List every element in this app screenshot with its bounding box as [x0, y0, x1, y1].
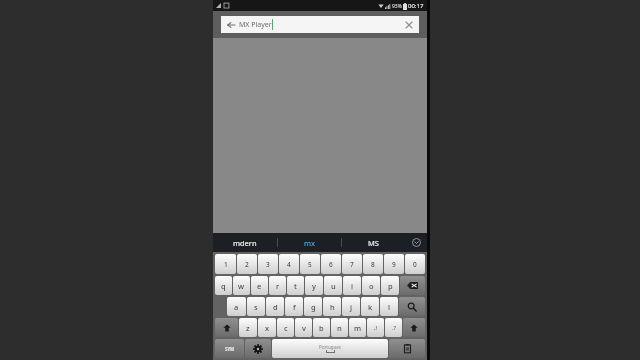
staticText: 5	[308, 260, 312, 269]
button[interactable]: i	[343, 276, 361, 295]
button[interactable]: Back	[225, 19, 236, 30]
staticText: SYM	[225, 346, 235, 352]
staticText: mx	[304, 238, 315, 248]
button[interactable]: v	[295, 318, 312, 337]
button[interactable]: Backspace	[400, 276, 425, 295]
staticText: 93%	[392, 3, 402, 10]
button[interactable]: Clear	[403, 19, 415, 31]
staticText: MX Player	[239, 20, 272, 30]
button[interactable]: w	[233, 276, 250, 295]
button[interactable]: SYM	[215, 339, 244, 358]
button[interactable]: MS	[342, 233, 405, 252]
staticText: 6	[329, 260, 333, 269]
button[interactable]: Portugues	[272, 339, 388, 358]
staticText: h	[330, 302, 335, 312]
button[interactable]: x	[258, 318, 276, 337]
staticText: t	[294, 281, 297, 291]
button[interactable]: 3	[258, 254, 278, 274]
staticText: 2	[245, 260, 249, 269]
button[interactable]: 5	[300, 254, 320, 274]
staticText: 4	[287, 260, 291, 269]
button[interactable]: mx	[278, 233, 341, 252]
button[interactable]: c	[277, 318, 294, 337]
staticText: 00:17	[408, 2, 424, 10]
staticText: e	[257, 281, 262, 291]
button[interactable]: h	[323, 297, 341, 316]
staticText: p	[388, 281, 393, 291]
staticText: q	[221, 281, 226, 291]
staticText: ,!	[374, 324, 378, 331]
staticText: 1	[224, 260, 228, 269]
button[interactable]: s	[247, 297, 265, 316]
staticText: n	[337, 323, 342, 333]
staticText: y	[312, 281, 316, 291]
button[interactable]: n	[331, 318, 348, 337]
button[interactable]: t	[287, 276, 304, 295]
staticText: 8	[371, 260, 375, 269]
staticText: m	[354, 323, 362, 333]
button[interactable]: 6	[321, 254, 341, 274]
staticText: c	[284, 323, 288, 333]
staticText: x	[265, 323, 270, 333]
button[interactable]: y	[305, 276, 323, 295]
staticText: 3	[266, 260, 270, 269]
staticText: 7	[350, 260, 354, 269]
staticText: Portugues	[319, 344, 341, 350]
staticText: v	[302, 323, 306, 333]
staticText: l	[388, 302, 391, 312]
button[interactable]: 8	[363, 254, 383, 274]
button[interactable]: j	[342, 297, 360, 316]
staticText: w	[238, 281, 245, 291]
staticText: MS	[368, 238, 379, 248]
button[interactable]: g	[304, 297, 322, 316]
button[interactable]: f	[285, 297, 303, 316]
button[interactable]: z	[239, 318, 257, 337]
button[interactable]: 1	[215, 254, 236, 274]
button[interactable]: d	[266, 297, 284, 316]
button[interactable]: Expand suggestions	[405, 233, 427, 252]
staticText: j	[350, 302, 353, 312]
button[interactable]: Shift	[403, 318, 425, 337]
button[interactable]: ,!	[367, 318, 384, 337]
button[interactable]: r	[269, 276, 286, 295]
button[interactable]: k	[361, 297, 379, 316]
button[interactable]: l	[380, 297, 398, 316]
button[interactable]: 2	[237, 254, 257, 274]
button[interactable]: q	[215, 276, 232, 295]
button[interactable]: e	[251, 276, 268, 295]
button[interactable]: a	[227, 297, 246, 316]
button[interactable]: 7	[342, 254, 362, 274]
staticText: o	[369, 281, 374, 291]
button[interactable]: u	[324, 276, 342, 295]
button[interactable]: .?	[385, 318, 402, 337]
button[interactable]: p	[381, 276, 399, 295]
staticText: f	[293, 302, 296, 312]
staticText: mdern	[233, 238, 257, 248]
staticText: g	[311, 302, 316, 312]
button[interactable]: 9	[384, 254, 404, 274]
button[interactable]: Back	[221, 16, 419, 33]
staticText: .?	[392, 324, 396, 331]
staticText: b	[319, 323, 324, 333]
staticText: s	[254, 302, 258, 312]
button[interactable]: Shift	[215, 318, 238, 337]
staticText: z	[246, 323, 250, 333]
staticText: u	[331, 281, 336, 291]
staticText: i	[351, 281, 354, 291]
button[interactable]: m	[349, 318, 366, 337]
button[interactable]: Clipboard	[389, 339, 425, 358]
staticText: k	[368, 302, 373, 312]
staticText: r	[276, 281, 280, 291]
staticText: 0	[413, 260, 417, 269]
button[interactable]: 4	[279, 254, 299, 274]
button[interactable]: 0	[405, 254, 425, 274]
button[interactable]: mdern	[213, 233, 277, 252]
button[interactable]: b	[313, 318, 330, 337]
staticText: a	[234, 302, 239, 312]
button[interactable]: o	[362, 276, 380, 295]
staticText: d	[273, 302, 278, 312]
staticText: 9	[392, 260, 396, 269]
button[interactable]: Settings	[245, 339, 271, 358]
button[interactable]: Search	[399, 297, 425, 316]
